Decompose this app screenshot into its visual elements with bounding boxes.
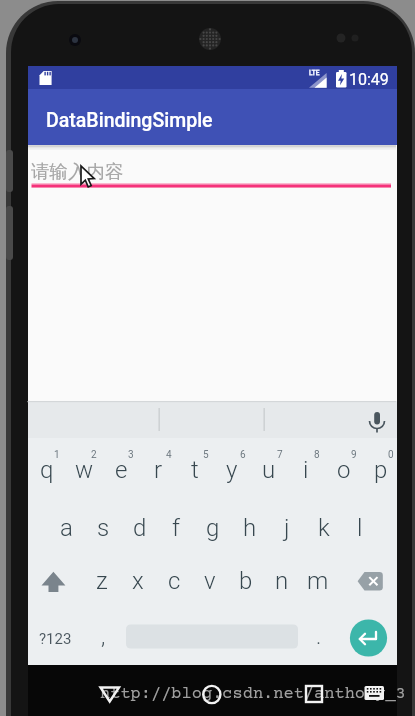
button[interactable]: j bbox=[227, 504, 347, 552]
button[interactable]: r bbox=[98, 446, 218, 494]
button[interactable] bbox=[296, 678, 332, 710]
button[interactable] bbox=[354, 564, 390, 598]
staticText: z bbox=[96, 567, 108, 595]
button[interactable]: g bbox=[153, 504, 273, 552]
staticText: ?123 bbox=[39, 630, 72, 648]
staticText: 8 bbox=[314, 449, 320, 461]
staticText: 请输入内容 bbox=[31, 160, 124, 183]
staticText: 6 bbox=[240, 449, 246, 461]
staticText: g bbox=[206, 514, 220, 542]
button[interactable] bbox=[92, 678, 128, 710]
staticText: d bbox=[133, 514, 147, 542]
staticText: r bbox=[154, 456, 163, 484]
button[interactable] bbox=[360, 678, 390, 710]
staticText: 9 bbox=[351, 449, 357, 461]
button[interactable] bbox=[194, 678, 230, 710]
staticText: 2 bbox=[91, 449, 97, 461]
staticText: w bbox=[75, 456, 94, 484]
staticText: LTE bbox=[309, 69, 320, 77]
button[interactable]: i bbox=[246, 446, 366, 494]
staticText: y bbox=[226, 456, 238, 484]
button[interactable]: DataBindingSimple bbox=[28, 89, 397, 145]
button[interactable]: 请输入内容 bbox=[31, 159, 381, 183]
staticText: , bbox=[101, 624, 106, 650]
staticText: x bbox=[132, 567, 144, 595]
button[interactable]: q bbox=[0, 446, 107, 494]
staticText: http://blog.csdn.net/anthony_3 bbox=[100, 685, 406, 704]
staticText: e bbox=[115, 456, 128, 484]
staticText: m bbox=[307, 567, 329, 595]
staticText: h bbox=[243, 514, 257, 542]
button[interactable]: p bbox=[321, 446, 415, 494]
button[interactable]: s bbox=[43, 504, 163, 552]
button[interactable]: w bbox=[24, 446, 144, 494]
button[interactable]: v bbox=[150, 557, 270, 605]
staticText: DataBindingSimple bbox=[46, 109, 213, 132]
button[interactable]: m bbox=[258, 557, 378, 605]
staticText: b bbox=[239, 567, 253, 595]
staticText: 0 bbox=[388, 449, 394, 461]
staticText: v bbox=[204, 567, 216, 595]
staticText: f bbox=[172, 514, 180, 542]
button[interactable]: f bbox=[116, 504, 236, 552]
button[interactable]: k bbox=[264, 504, 384, 552]
button[interactable]: , bbox=[43, 613, 163, 661]
button[interactable]: l bbox=[300, 504, 415, 552]
staticText: 4 bbox=[166, 449, 172, 461]
button[interactable] bbox=[36, 564, 72, 598]
staticText: 3 bbox=[128, 449, 134, 461]
staticText: . bbox=[316, 624, 322, 650]
button[interactable] bbox=[349, 619, 387, 657]
button[interactable]: e bbox=[61, 446, 181, 494]
staticText: a bbox=[60, 514, 73, 542]
staticText: u bbox=[262, 456, 276, 484]
button[interactable]: h bbox=[190, 504, 310, 552]
button[interactable] bbox=[28, 401, 397, 438]
staticText: p bbox=[374, 456, 388, 484]
button[interactable]: b bbox=[186, 557, 306, 605]
staticText: j bbox=[284, 514, 290, 542]
button[interactable]: n bbox=[222, 557, 342, 605]
staticText: 7 bbox=[277, 449, 283, 461]
button[interactable]: o bbox=[284, 446, 404, 494]
staticText: i bbox=[303, 456, 309, 484]
staticText: t bbox=[191, 456, 199, 484]
staticText: 10:49 bbox=[349, 70, 389, 89]
button[interactable]: a bbox=[6, 504, 126, 552]
button[interactable]: x bbox=[78, 557, 198, 605]
button[interactable]: u bbox=[209, 446, 329, 494]
staticText: l bbox=[357, 514, 363, 542]
button[interactable]: ?123 bbox=[0, 615, 115, 663]
staticText: k bbox=[318, 514, 330, 542]
staticText: q bbox=[40, 456, 54, 484]
staticText: o bbox=[337, 456, 351, 484]
button[interactable]: . bbox=[259, 613, 379, 661]
button[interactable]: d bbox=[80, 504, 200, 552]
staticText: 5 bbox=[203, 449, 209, 461]
button[interactable]: t bbox=[135, 446, 255, 494]
staticText: 1 bbox=[54, 449, 60, 461]
button[interactable]: y bbox=[172, 446, 292, 494]
staticText: n bbox=[275, 567, 289, 595]
button[interactable]: z bbox=[42, 557, 162, 605]
staticText: s bbox=[97, 514, 110, 542]
staticText: c bbox=[168, 567, 181, 595]
button[interactable]: c bbox=[114, 557, 234, 605]
